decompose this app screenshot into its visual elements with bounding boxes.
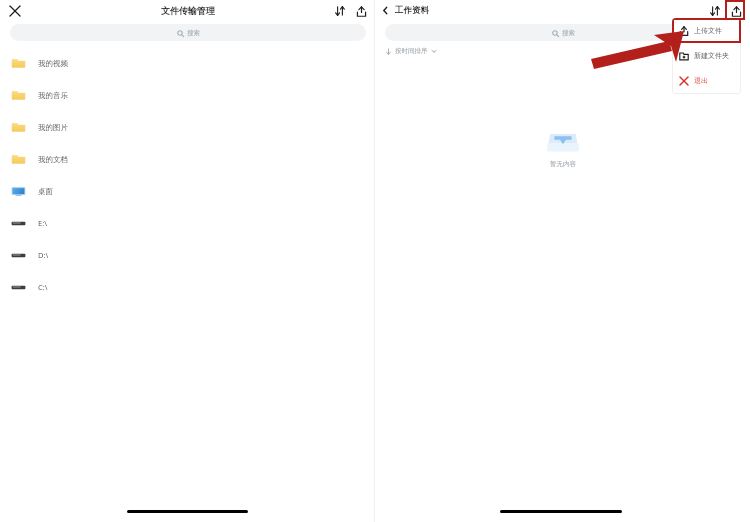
button[interactable]: Sort bbox=[331, 2, 349, 20]
button[interactable]: 退出 bbox=[672, 68, 741, 93]
button[interactable]: 新建文件夹 bbox=[672, 43, 741, 68]
button[interactable]: Close bbox=[5, 1, 25, 21]
staticText: E:\ bbox=[38, 218, 47, 228]
button[interactable]: Upload bbox=[727, 2, 745, 20]
button[interactable]: E:\ bbox=[0, 207, 375, 239]
staticText: 暂无内容 bbox=[550, 160, 576, 168]
staticText: 我的视频 bbox=[38, 59, 68, 68]
button[interactable]: 搜索 bbox=[385, 24, 741, 41]
staticText: 文件传输管理 bbox=[161, 5, 215, 16]
staticText: 桌面 bbox=[38, 187, 53, 196]
button[interactable]: 桌面 bbox=[0, 175, 375, 207]
button[interactable]: 工作资料 bbox=[381, 5, 429, 16]
staticText: 我的文档 bbox=[38, 155, 68, 164]
button[interactable]: C:\ bbox=[0, 271, 375, 303]
button[interactable]: 我的文档 bbox=[0, 143, 375, 175]
staticText: 我的音乐 bbox=[38, 91, 68, 100]
button[interactable]: 我的视频 bbox=[0, 47, 375, 79]
button[interactable]: 我的音乐 bbox=[0, 79, 375, 111]
staticText: 我的图片 bbox=[38, 123, 68, 132]
staticText: C:\ bbox=[38, 282, 48, 292]
button[interactable]: 我的图片 bbox=[0, 111, 375, 143]
staticText: D:\ bbox=[38, 250, 49, 260]
button[interactable]: Sort bbox=[706, 2, 724, 20]
button[interactable]: 搜索 bbox=[10, 24, 366, 41]
staticText: 上传文件 bbox=[694, 26, 722, 35]
button[interactable]: Upload bbox=[352, 2, 370, 20]
button[interactable]: 上传文件 bbox=[672, 18, 741, 43]
staticText: 退出 bbox=[694, 76, 708, 85]
staticText: 搜索 bbox=[562, 29, 575, 37]
button[interactable]: D:\ bbox=[0, 239, 375, 271]
staticText: 新建文件夹 bbox=[694, 51, 729, 60]
button[interactable]: 按时间排序 bbox=[385, 47, 437, 55]
staticText: 搜索 bbox=[187, 29, 200, 37]
staticText: 工作资料 bbox=[395, 5, 429, 16]
staticText: 按时间排序 bbox=[395, 47, 428, 55]
